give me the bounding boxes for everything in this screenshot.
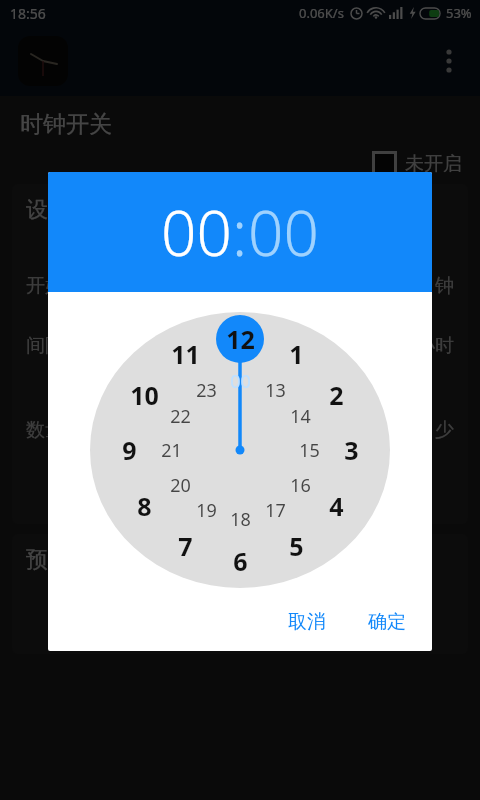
staticText: 未开启 (405, 152, 462, 176)
button[interactable]: 00 (248, 190, 319, 274)
staticText: 0.06K/s (299, 4, 344, 22)
staticText: 2 (329, 378, 344, 412)
staticText: 6 (233, 544, 248, 578)
staticText: 小时 (416, 334, 454, 358)
staticText: 设置 (26, 196, 70, 224)
button[interactable]: App icon (18, 36, 68, 86)
staticText: 15 (299, 438, 320, 463)
staticText: 9 (122, 433, 137, 467)
staticText: 间隔 (26, 334, 64, 358)
staticText: 00 (230, 369, 251, 394)
staticText: 数量 (26, 418, 64, 442)
button[interactable] (90, 312, 390, 588)
button[interactable]: 00 (161, 190, 232, 274)
button[interactable]: 未开启 checkbox (372, 151, 397, 176)
staticText: 少 (435, 418, 454, 442)
staticText: 1 (289, 337, 304, 371)
staticText: 13 (265, 378, 286, 403)
staticText: 预览 (26, 546, 70, 574)
staticText: 10 (130, 378, 159, 412)
staticText: 53% (446, 4, 472, 22)
staticText: 4 (329, 489, 344, 523)
button[interactable]: More options (434, 46, 464, 76)
staticText: 18:56 (10, 4, 46, 23)
staticText: 19 (196, 498, 217, 523)
staticText: 取消 (288, 610, 326, 634)
staticText: 钟 (435, 274, 454, 298)
button[interactable]: 取消 (276, 602, 338, 642)
staticText: 20 (170, 473, 191, 498)
button[interactable]: 确定 (356, 602, 418, 642)
staticText: 12 (226, 322, 255, 356)
staticText: 17 (265, 498, 286, 523)
staticText: 22 (170, 404, 191, 429)
staticText: 11 (171, 337, 200, 371)
staticText: 8 (137, 489, 152, 523)
staticText: 14 (290, 404, 311, 429)
staticText: 21 (161, 438, 182, 463)
staticText: 7 (178, 529, 193, 563)
staticText: 18 (230, 507, 251, 532)
staticText: 时钟开关 (20, 110, 112, 139)
staticText: : (232, 190, 248, 274)
staticText: 开始 (26, 274, 64, 298)
staticText: 3 (344, 433, 359, 467)
staticText: 确定 (368, 610, 406, 634)
staticText: 16 (290, 473, 311, 498)
staticText: 23 (196, 378, 217, 403)
staticText: 5 (289, 529, 304, 563)
